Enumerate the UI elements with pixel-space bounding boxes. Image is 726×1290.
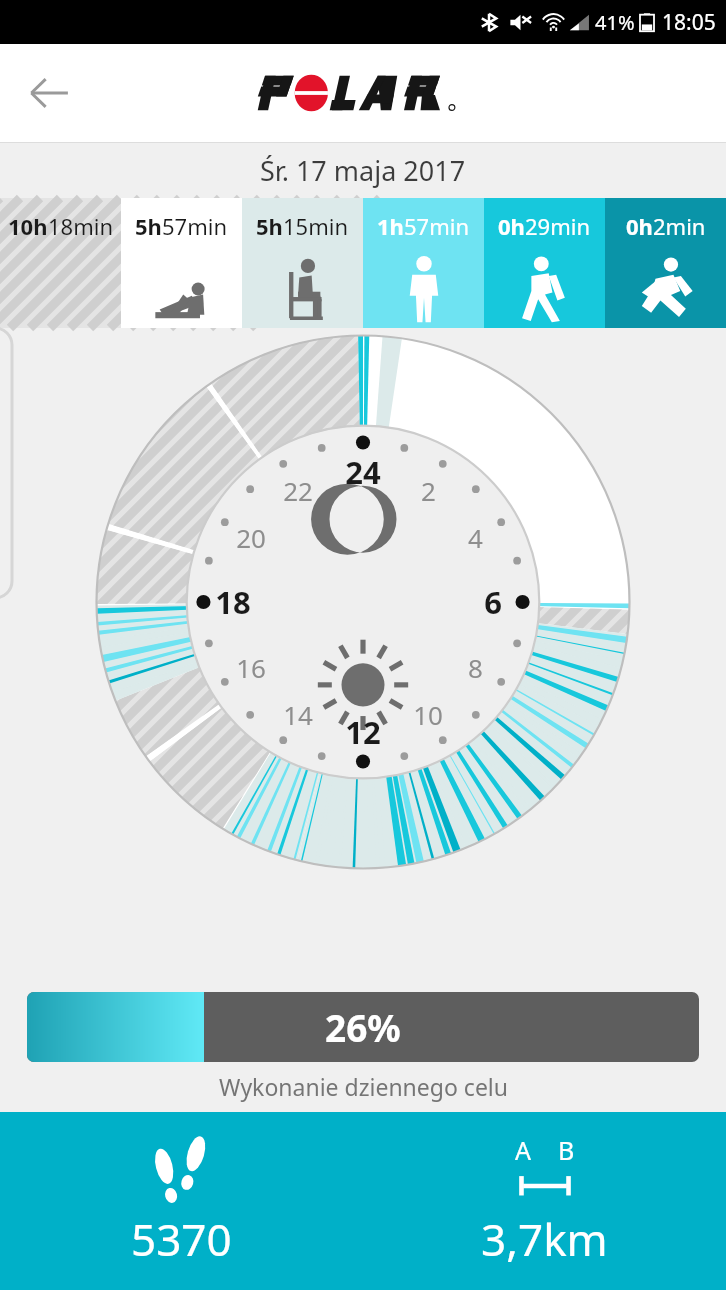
staticText: 2 bbox=[421, 473, 436, 508]
button[interactable]: 5h bbox=[242, 198, 363, 328]
staticText: 12 bbox=[345, 711, 381, 753]
staticText: Śr. 17 maja 2017 bbox=[260, 152, 466, 189]
staticText: 16 bbox=[236, 650, 266, 685]
staticText: B bbox=[558, 1133, 575, 1167]
button[interactable]: Back bbox=[16, 60, 82, 126]
staticText: 41% bbox=[595, 9, 635, 36]
staticText: 22 bbox=[283, 473, 313, 508]
button[interactable]: 5h bbox=[121, 198, 242, 328]
staticText: 29min bbox=[525, 211, 591, 241]
staticText: 14 bbox=[283, 697, 313, 732]
staticText: 10 bbox=[413, 697, 443, 732]
staticText: 57min bbox=[162, 211, 228, 241]
other: Steps bbox=[149, 1133, 215, 1205]
staticText: 10h bbox=[8, 211, 48, 241]
staticText: 2min bbox=[653, 211, 706, 241]
button[interactable]: Distance bbox=[363, 1112, 726, 1290]
staticText: A bbox=[515, 1133, 531, 1167]
staticText: 3,7km bbox=[481, 1209, 608, 1269]
staticText: 1h bbox=[377, 211, 404, 241]
staticText: 18min bbox=[48, 211, 114, 241]
staticText: 6 bbox=[484, 581, 502, 623]
staticText: 5370 bbox=[131, 1209, 232, 1269]
button[interactable]: 1h bbox=[363, 198, 484, 328]
staticText: 0h bbox=[626, 211, 653, 241]
staticText: 5h bbox=[135, 211, 162, 241]
staticText: 24 bbox=[345, 451, 381, 493]
staticText: Wykonanie dziennego celu bbox=[219, 1071, 508, 1102]
staticText: 8 bbox=[468, 650, 483, 685]
staticText: 26% bbox=[325, 1002, 401, 1052]
staticText: 4 bbox=[468, 520, 483, 555]
staticText: 5h bbox=[256, 211, 283, 241]
button[interactable]: 10h bbox=[0, 198, 121, 328]
button[interactable]: 26% bbox=[27, 992, 699, 1062]
staticText: 18:05 bbox=[662, 8, 716, 37]
staticText: 18 bbox=[215, 581, 251, 623]
staticText: 20 bbox=[236, 520, 266, 555]
button[interactable]: 0h bbox=[605, 198, 726, 328]
button[interactable]: Steps bbox=[0, 1112, 363, 1290]
staticText: 57min bbox=[404, 211, 470, 241]
staticText: 15min bbox=[283, 211, 349, 241]
other: Distance bbox=[503, 1133, 587, 1205]
button[interactable]: 0h bbox=[484, 198, 605, 328]
staticText: 0h bbox=[498, 211, 525, 241]
